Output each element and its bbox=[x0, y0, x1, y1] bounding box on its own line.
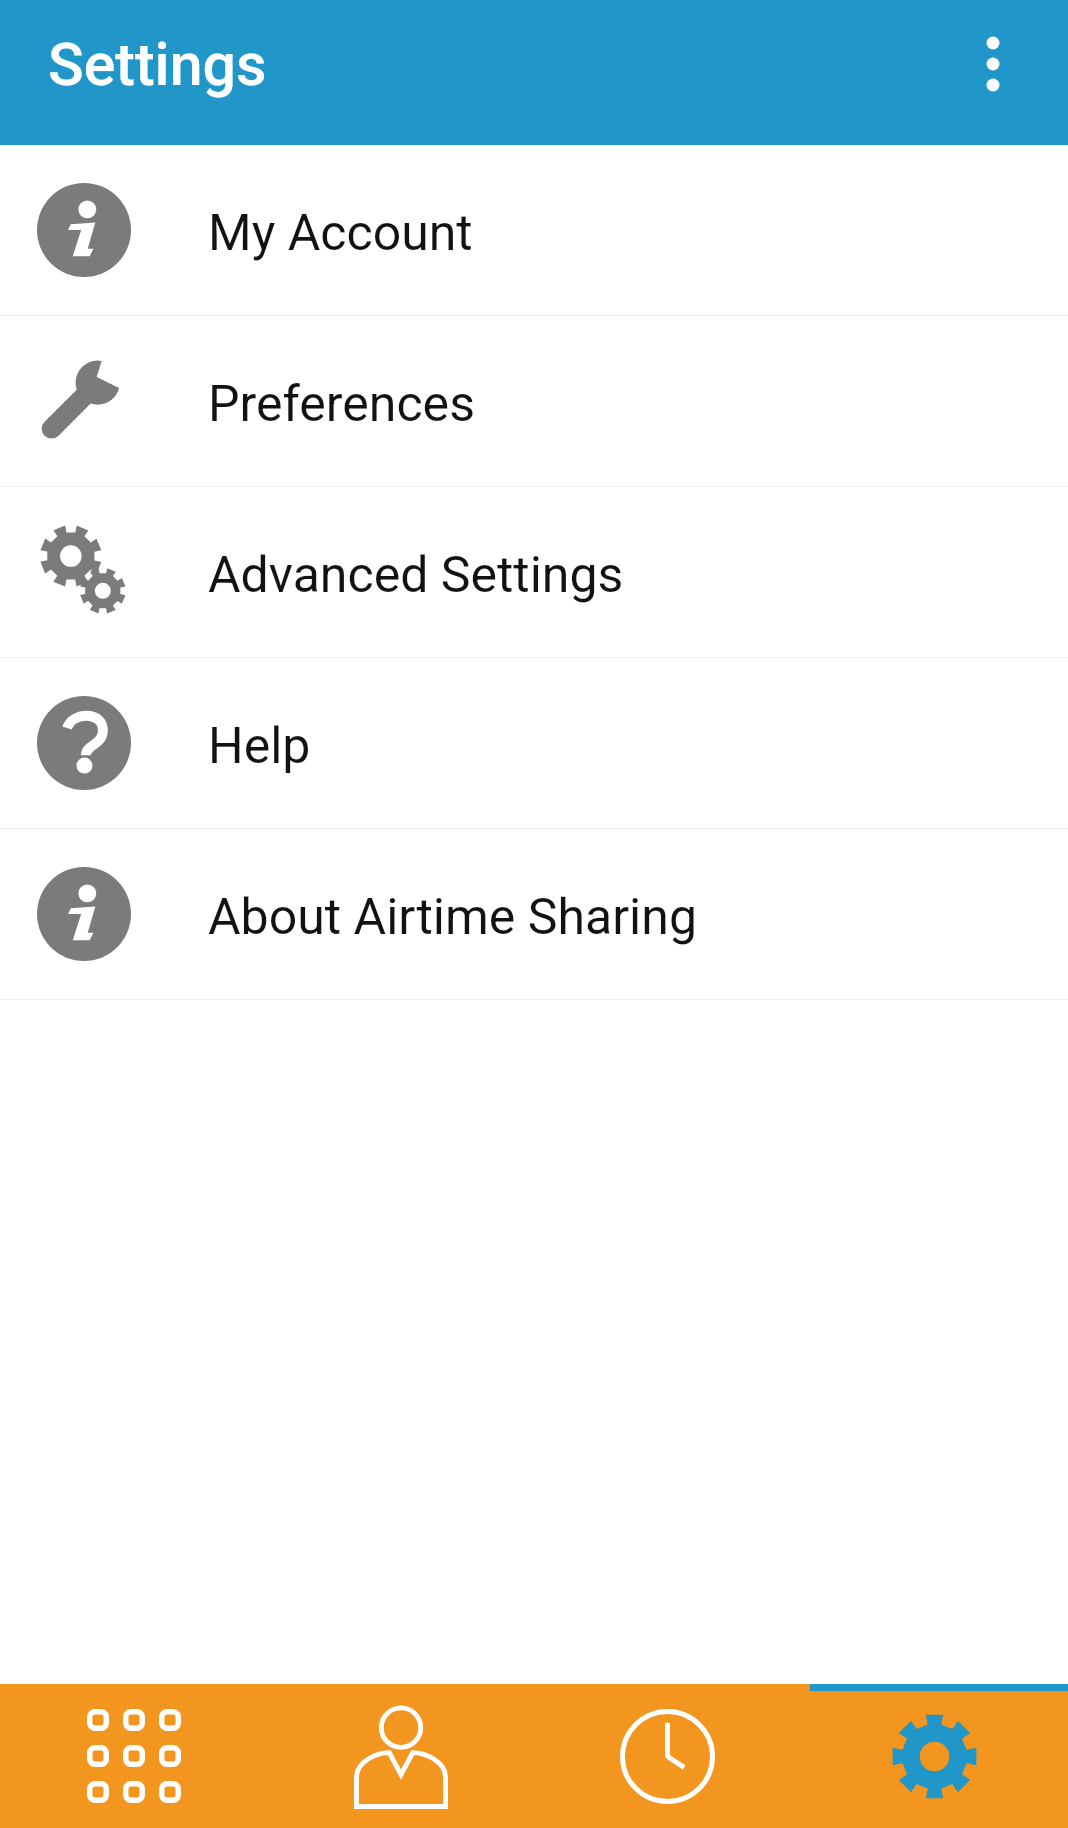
staticText: Settings bbox=[48, 30, 267, 99]
staticText: About Airtime Sharing bbox=[208, 888, 697, 947]
button[interactable]: Settings bbox=[801, 1684, 1068, 1828]
button[interactable]: Profile bbox=[267, 1684, 534, 1828]
button[interactable]: Apps bbox=[0, 1684, 267, 1828]
button[interactable]: My Account bbox=[0, 145, 1068, 316]
button[interactable]: Advanced Settings bbox=[0, 487, 1068, 658]
button[interactable]: Preferences bbox=[0, 316, 1068, 487]
button[interactable]: About Airtime Sharing bbox=[0, 829, 1068, 1000]
staticText: Help bbox=[208, 717, 311, 776]
button[interactable]: Help bbox=[0, 658, 1068, 829]
button[interactable]: History bbox=[534, 1684, 801, 1828]
button[interactable]: More options bbox=[938, 0, 1048, 110]
staticText: Advanced Settings bbox=[208, 546, 624, 605]
staticText: My Account bbox=[208, 204, 473, 263]
staticText: Preferences bbox=[208, 375, 475, 434]
